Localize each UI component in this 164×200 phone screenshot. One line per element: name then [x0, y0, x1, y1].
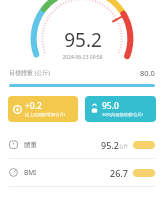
staticText: BMI — [24, 168, 37, 177]
button[interactable]: +0.2 — [8, 96, 78, 122]
button[interactable]: 目標體重 (公斤) — [0, 62, 164, 84]
staticText: 95.2 — [64, 27, 102, 53]
button[interactable]: 體重 — [0, 131, 164, 158]
staticText: 目標體重 (公斤) — [9, 69, 51, 77]
button[interactable]: 趨勢 — [133, 169, 155, 177]
button[interactable]: BMI — [0, 159, 164, 186]
staticText: 80.0 — [140, 68, 155, 78]
button[interactable]: 95.0 — [85, 96, 156, 122]
staticText: 30天內最低體重(公斤) — [102, 112, 143, 118]
staticText: 體重 — [24, 141, 37, 149]
staticText: 26.7 — [110, 167, 128, 179]
staticText: 2024-06-23 09:58 — [62, 54, 103, 61]
staticText: 比上次測量增加(公斤) — [25, 112, 66, 118]
staticText: 95.2 — [101, 139, 119, 151]
staticText: 公斤 — [119, 144, 128, 150]
button[interactable]: 趨勢 — [133, 141, 155, 149]
staticText: 95.0 — [102, 100, 119, 112]
staticText: +0.2 — [25, 100, 42, 112]
